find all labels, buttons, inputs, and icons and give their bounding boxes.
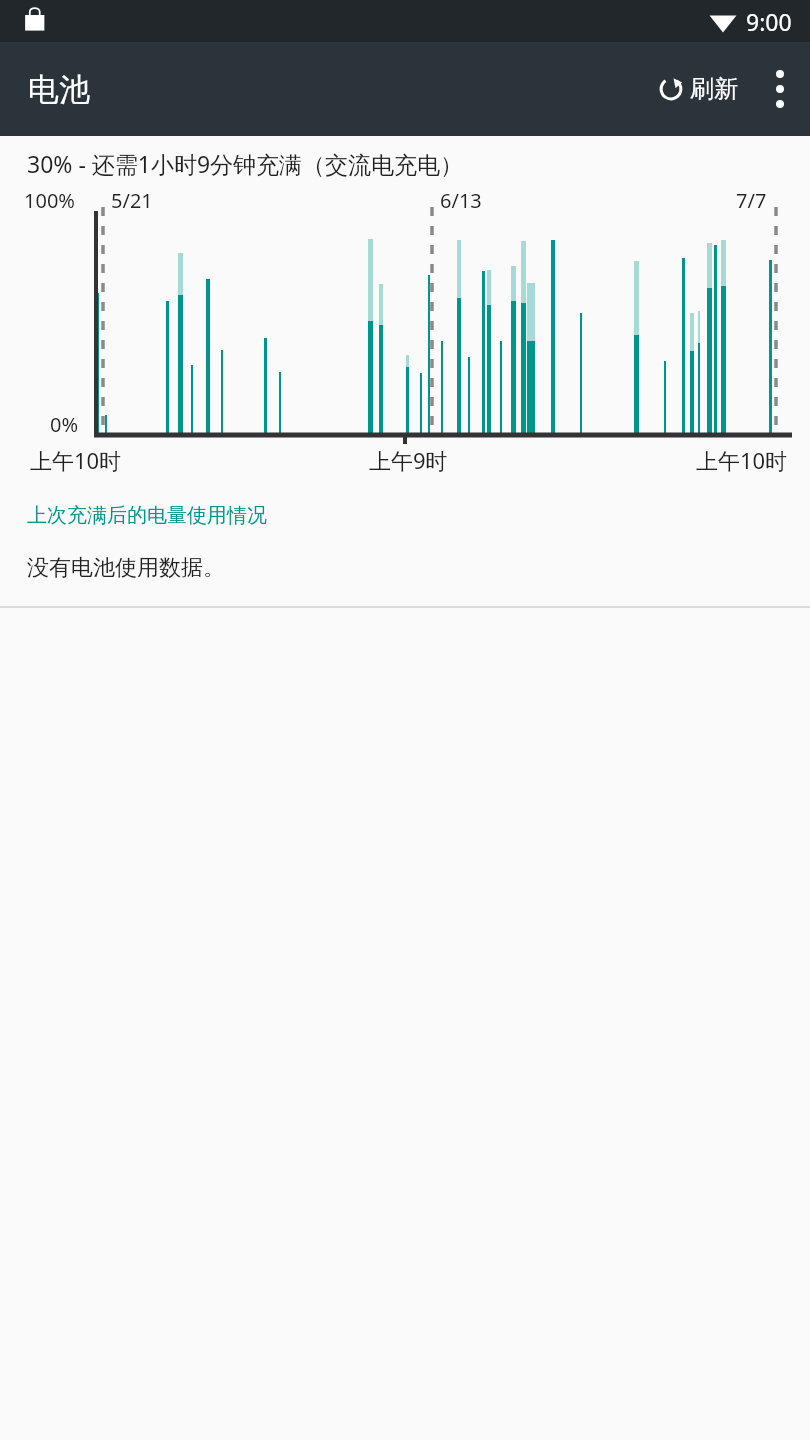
staticText: 7/7 — [736, 187, 767, 214]
staticText: 电池 — [28, 70, 90, 109]
staticText: 9:00 — [746, 6, 792, 37]
staticText: 0% — [50, 411, 79, 438]
staticText: 30% - 还需1小时9分钟充满（交流电充电） — [27, 148, 464, 179]
button[interactable]: 上次充满后的电量使用情况 — [0, 489, 294, 534]
staticText: 上午10时 — [696, 445, 788, 475]
button[interactable]: 刷新 — [644, 60, 750, 118]
button[interactable]: More options — [750, 42, 810, 136]
other: Wi-Fi — [709, 11, 737, 33]
staticText: 100% — [24, 187, 75, 214]
staticText: 刷新 — [690, 74, 738, 104]
staticText: 没有电池使用数据。 — [27, 554, 225, 582]
staticText: 上午9时 — [369, 445, 448, 475]
staticText: 6/13 — [440, 187, 482, 214]
staticText: 上午10时 — [30, 445, 122, 475]
staticText: 5/21 — [111, 187, 153, 214]
